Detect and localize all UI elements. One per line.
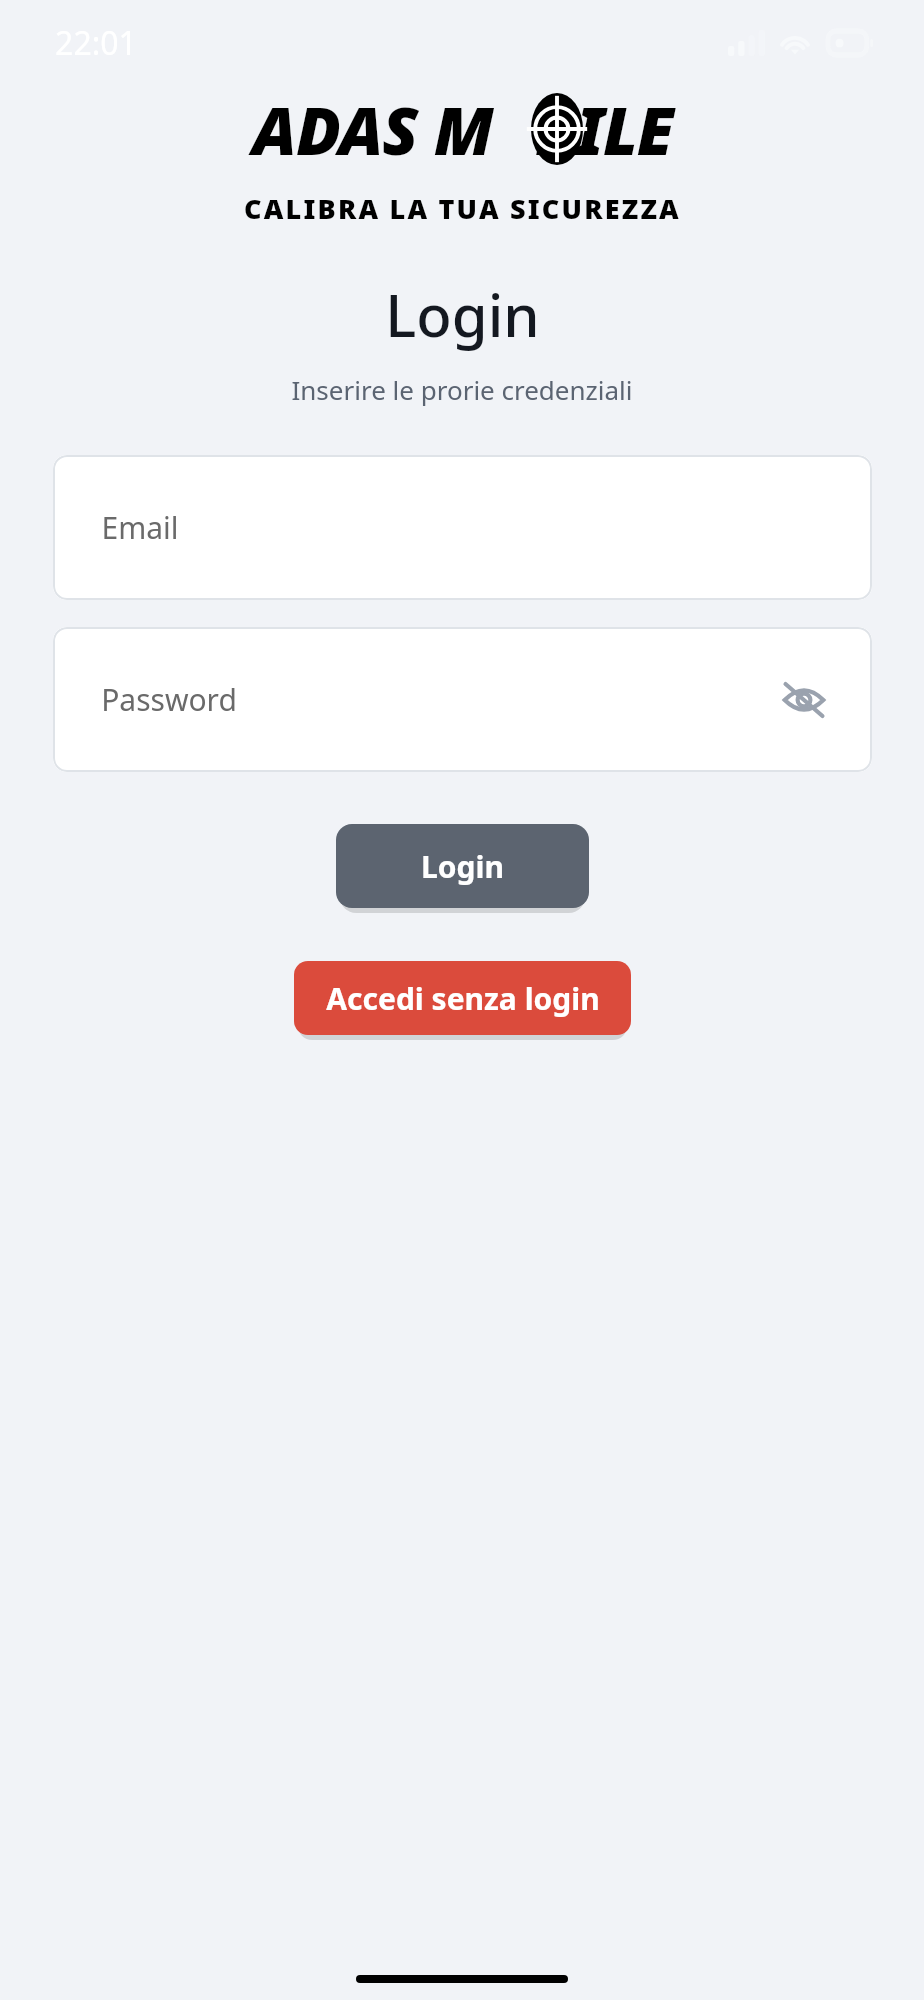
staticText: Accedi senza login [326, 978, 600, 1019]
staticText: 22:01 [55, 21, 137, 65]
staticText: BILE [535, 84, 673, 174]
button[interactable]: Accedi senza login [294, 961, 631, 1035]
staticText: Login [385, 275, 540, 354]
staticText: Password [101, 679, 237, 720]
staticText: CALIBRA LA TUA SICUREZZA [244, 190, 681, 227]
button[interactable]: Password [53, 627, 872, 772]
staticText: Login [421, 846, 504, 887]
staticText: Inserire le prorie credenziali [291, 372, 633, 407]
button[interactable]: Login [336, 824, 589, 908]
staticText: Email [101, 507, 179, 548]
staticText: ADAS M [252, 84, 493, 174]
button[interactable]: Email [53, 455, 872, 600]
button[interactable]: Show password [772, 668, 836, 732]
